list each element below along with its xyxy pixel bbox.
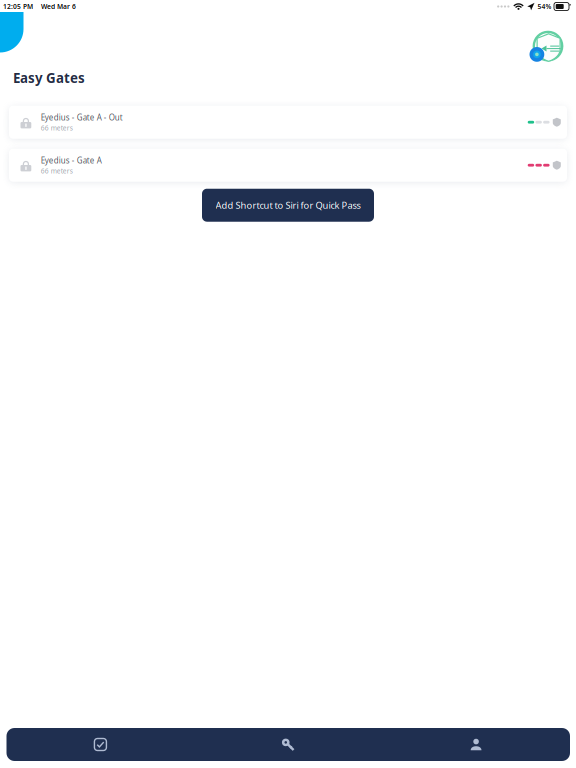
staticText: Add Shortcut to Siri for Quick Pass: [215, 199, 360, 211]
button[interactable]: Gates: [6, 728, 194, 761]
staticText: 66 meters: [41, 124, 73, 132]
staticText: Easy Gates: [13, 69, 85, 87]
button[interactable]: Profile: [382, 728, 570, 761]
button[interactable]: Keys: [194, 728, 382, 761]
staticText: Wed Mar 6: [41, 2, 76, 11]
staticText: 12:05 PM: [3, 2, 33, 11]
button[interactable]: Eyedius - Gate A - Out: [9, 106, 567, 139]
button[interactable]: Eyedius - Gate A: [9, 149, 567, 182]
staticText: 66 meters: [41, 167, 73, 175]
button[interactable]: Add Shortcut to Siri for Quick Pass: [202, 189, 374, 222]
staticText: Eyedius - Gate A - Out: [41, 112, 123, 123]
staticText: Eyedius - Gate A: [41, 155, 102, 166]
button[interactable]: Security status: [529, 30, 564, 64]
staticText: 54%: [537, 2, 551, 11]
